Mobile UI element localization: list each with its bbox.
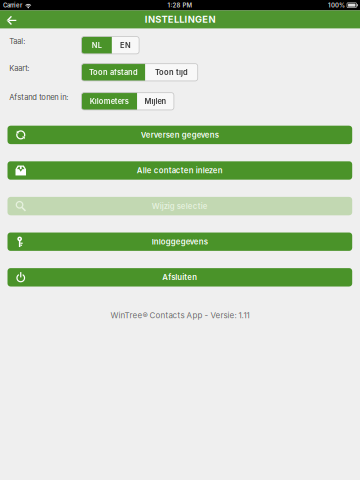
staticText: Alle contacten inlezen [137, 166, 223, 175]
staticText: EN [120, 41, 131, 50]
staticText: Afstand tonen in: [9, 93, 68, 102]
staticText: Kaart: [9, 64, 29, 73]
button[interactable]: EN [112, 36, 139, 54]
staticText: NL [92, 41, 102, 50]
button[interactable]: Kilometers [81, 93, 137, 110]
staticText: INSTELLINGEN [145, 14, 215, 25]
staticText: Mijlen [144, 97, 166, 106]
button[interactable]: Afsluiten [7, 268, 352, 286]
staticText: 100% [328, 2, 345, 9]
staticText: Afsluiten [162, 273, 197, 282]
staticText: 1:28 PM [167, 2, 192, 9]
button[interactable]: Toon afstand [81, 64, 145, 81]
button[interactable]: Verversen gegevens [7, 126, 352, 144]
staticText: WinTree® Contacts App - Versie: 1.11 [110, 310, 249, 320]
button[interactable]: Wijzig selectie [7, 197, 352, 215]
staticText: Carrier [3, 2, 22, 9]
button[interactable]: Back [0, 10, 22, 28]
staticText: Taal: [9, 37, 25, 46]
staticText: Verversen gegevens [141, 130, 219, 140]
staticText: Wijzig selectie [152, 201, 208, 211]
staticText: Toon tijd [155, 68, 188, 77]
staticText: Toon afstand [89, 68, 138, 77]
staticText: Kilometers [90, 97, 129, 106]
button[interactable]: Inloggegevens [7, 232, 352, 251]
button[interactable]: Mijlen [137, 93, 174, 110]
button[interactable]: Toon tijd [145, 64, 198, 81]
staticText: Inloggegevens [152, 237, 208, 246]
button[interactable]: NL [81, 36, 112, 54]
button[interactable]: Alle contacten inlezen [7, 161, 352, 180]
